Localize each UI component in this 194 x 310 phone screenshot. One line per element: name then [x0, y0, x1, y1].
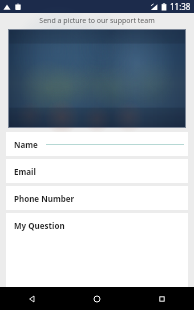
button[interactable]: Email — [6, 159, 188, 183]
staticText: Name — [14, 139, 38, 150]
button[interactable]: My Question — [6, 213, 188, 287]
button[interactable]: Attached picture — [9, 30, 185, 127]
button[interactable]: Phone Number — [6, 186, 188, 210]
button[interactable]: Name — [6, 132, 188, 156]
button[interactable]: Back — [0, 287, 64, 310]
button[interactable]: Home — [64, 287, 129, 310]
staticText: Phone Number — [14, 193, 75, 204]
staticText: My Question — [14, 220, 65, 231]
staticText: 11:38 — [170, 1, 191, 12]
staticText: Send a picture to our support team — [39, 16, 155, 26]
button[interactable]: Recent apps — [129, 287, 194, 310]
staticText: Email — [14, 166, 36, 177]
